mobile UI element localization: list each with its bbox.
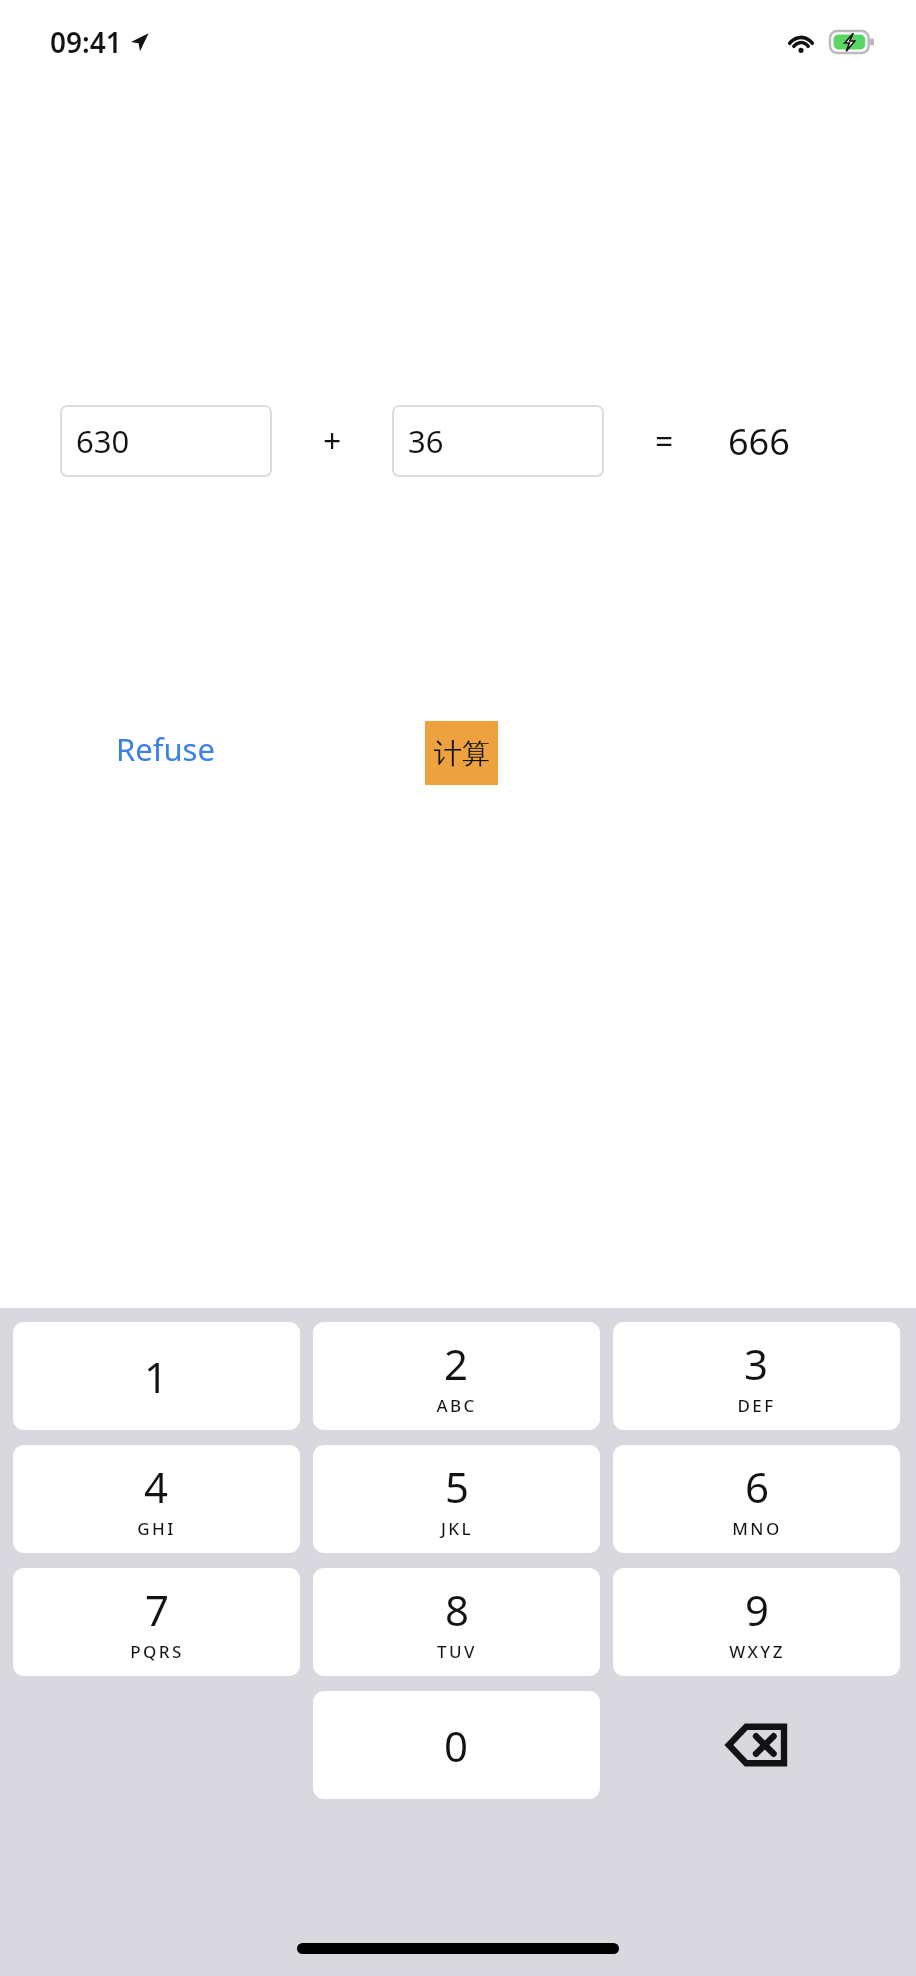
staticText: GHI <box>137 1517 176 1540</box>
staticText: 666 <box>728 417 790 466</box>
staticText: MNO <box>732 1517 782 1540</box>
staticText: 1 <box>144 1348 169 1405</box>
button[interactable]: 1 <box>13 1322 300 1430</box>
staticText: 6 <box>745 1458 770 1515</box>
staticText: 5 <box>445 1458 470 1515</box>
button[interactable]: 4 <box>13 1445 300 1553</box>
button[interactable]: 3 <box>613 1322 900 1430</box>
button[interactable]: 5 <box>313 1445 600 1553</box>
staticText: PQRS <box>130 1640 184 1663</box>
button[interactable]: 0 <box>313 1691 600 1799</box>
staticText: JKL <box>441 1517 473 1540</box>
staticText: 9 <box>745 1581 770 1638</box>
staticText: 36 <box>408 420 444 462</box>
button[interactable]: 7 <box>13 1568 300 1676</box>
staticText: 8 <box>445 1581 470 1638</box>
button[interactable]: 2 <box>313 1322 600 1430</box>
staticText: 3 <box>744 1335 769 1392</box>
staticText: 09:41 <box>50 23 122 61</box>
staticText: TUV <box>437 1640 477 1663</box>
button[interactable]: Refuse <box>114 722 217 776</box>
button[interactable]: 36 <box>392 405 604 477</box>
button[interactable]: 计算 <box>425 721 498 785</box>
staticText: 2 <box>444 1335 469 1392</box>
button[interactable]: 630 <box>60 405 272 477</box>
staticText: 0 <box>444 1717 469 1774</box>
staticText: 4 <box>144 1458 169 1515</box>
button[interactable]: 9 <box>613 1568 900 1676</box>
staticText: Refuse <box>116 728 215 770</box>
button[interactable]: Delete <box>613 1691 900 1799</box>
staticText: 7 <box>145 1581 170 1638</box>
staticText: = <box>655 419 674 463</box>
staticText: DEF <box>737 1394 776 1417</box>
staticText: 630 <box>76 420 130 462</box>
button[interactable]: 6 <box>613 1445 900 1553</box>
staticText: + <box>323 419 342 463</box>
staticText: ABC <box>436 1394 477 1417</box>
staticText: 计算 <box>434 736 490 771</box>
staticText: WXYZ <box>729 1640 785 1663</box>
button[interactable]: 8 <box>313 1568 600 1676</box>
